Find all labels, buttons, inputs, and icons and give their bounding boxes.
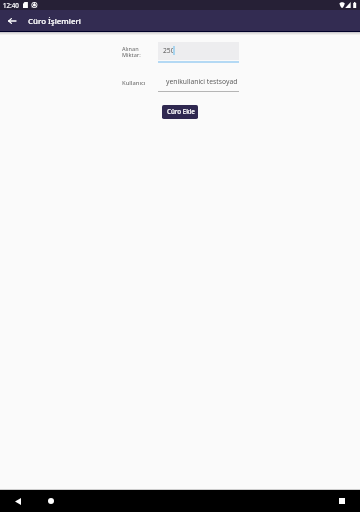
button[interactable]: Back — [9, 492, 27, 510]
button[interactable]: Alınan Miktar input — [158, 42, 239, 63]
staticText: Alınan Miktar: — [122, 45, 156, 58]
staticText: yenikullanici testsoyad — [166, 77, 238, 86]
staticText: 12:40 — [3, 1, 19, 9]
staticText: Kullanıcı — [122, 79, 146, 87]
staticText: 250 — [163, 46, 175, 55]
button[interactable]: Recent apps — [333, 492, 351, 510]
button[interactable]: Home — [42, 492, 60, 510]
button[interactable]: yenikullanici testsoyad — [158, 76, 239, 92]
staticText: Cüro İşlemleri — [28, 16, 81, 27]
button[interactable]: Cüro Ekle — [162, 105, 198, 119]
button[interactable]: Back — [4, 13, 20, 29]
staticText: Cüro Ekle — [167, 107, 195, 115]
